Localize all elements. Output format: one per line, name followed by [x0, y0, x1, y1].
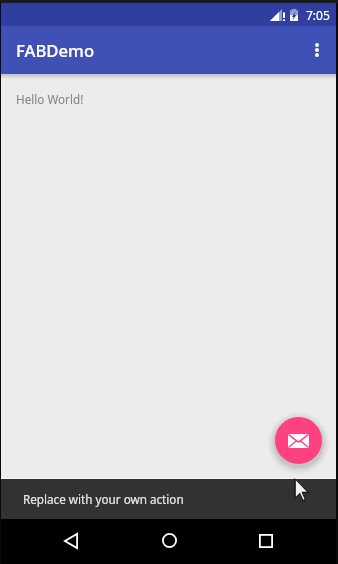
staticText: Hello World! — [16, 91, 84, 107]
button[interactable]: Compose email — [275, 417, 322, 464]
button[interactable]: Recent apps — [242, 518, 290, 563]
staticText: FABDemo — [16, 39, 95, 62]
button[interactable]: Replace with your own action — [1, 479, 336, 519]
button[interactable]: Back — [47, 518, 95, 563]
staticText: 7:05 — [306, 7, 330, 23]
staticText: Replace with your own action — [23, 491, 184, 507]
button[interactable]: Home — [145, 518, 193, 563]
button[interactable]: More options — [297, 26, 336, 74]
